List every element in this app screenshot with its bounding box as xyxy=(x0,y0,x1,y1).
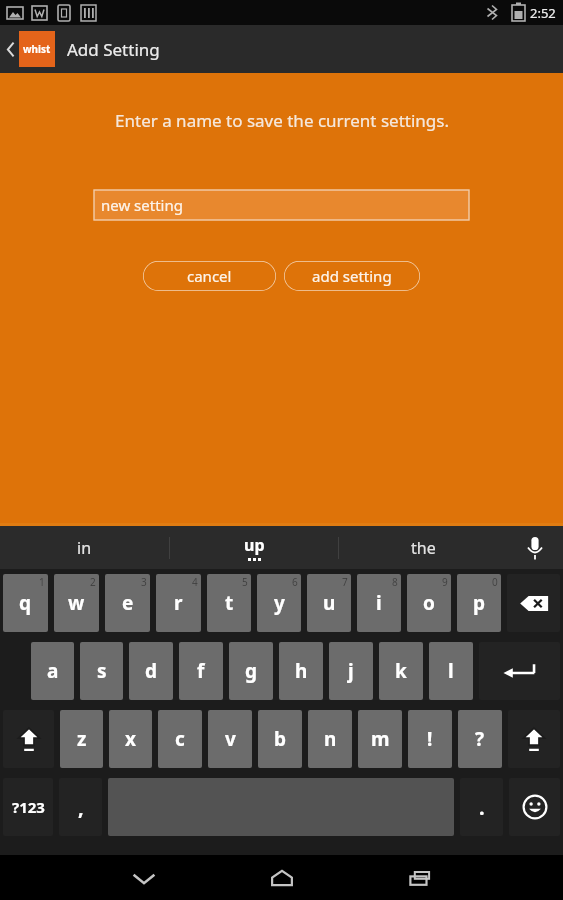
staticText: 4 xyxy=(192,575,198,589)
staticText: d xyxy=(145,658,158,684)
button[interactable]: . xyxy=(460,778,503,836)
button[interactable]: Enter xyxy=(479,642,560,700)
staticText: n xyxy=(324,726,337,752)
other: Back xyxy=(5,40,16,59)
button[interactable]: new setting xyxy=(94,190,469,220)
button[interactable]: h xyxy=(279,642,323,700)
button[interactable]: in xyxy=(0,526,169,569)
staticText: 6 xyxy=(292,575,298,589)
button[interactable]: l xyxy=(429,642,473,700)
staticText: a xyxy=(47,658,59,684)
button[interactable]: Voice input xyxy=(507,526,563,569)
staticText: b xyxy=(274,726,287,752)
button[interactable]: y xyxy=(257,574,301,632)
button[interactable]: Back xyxy=(0,25,160,73)
staticText: p xyxy=(473,590,486,616)
button[interactable]: w xyxy=(54,574,99,632)
staticText: 5 xyxy=(242,575,248,589)
button[interactable]: p xyxy=(457,574,501,632)
button[interactable]: the xyxy=(339,526,507,569)
button[interactable]: g xyxy=(229,642,273,700)
staticText: Add Setting xyxy=(67,38,160,61)
staticText: ?123 xyxy=(12,797,45,817)
staticText: k xyxy=(395,658,407,684)
button[interactable]: i xyxy=(357,574,401,632)
button[interactable]: b xyxy=(258,710,302,768)
button[interactable]: cancel xyxy=(143,261,276,291)
staticText: h xyxy=(295,658,308,684)
staticText: 1 xyxy=(39,575,45,589)
button[interactable]: ? xyxy=(458,710,502,768)
staticText: f xyxy=(197,658,205,684)
button[interactable]: s xyxy=(80,642,123,700)
staticText: ! xyxy=(427,726,433,752)
button[interactable]: u xyxy=(307,574,351,632)
button[interactable]: c xyxy=(158,710,202,768)
staticText: the xyxy=(411,537,436,559)
staticText: 7 xyxy=(342,575,348,589)
staticText: x xyxy=(125,726,136,752)
staticText: i xyxy=(376,590,382,616)
staticText: new setting xyxy=(101,195,183,215)
staticText: q xyxy=(19,590,32,616)
staticText: v xyxy=(225,726,236,752)
button[interactable]: q xyxy=(3,574,48,632)
staticText: r xyxy=(174,590,183,616)
staticText: . xyxy=(479,794,485,821)
staticText: 2 xyxy=(90,575,96,589)
staticText: ? xyxy=(475,726,485,752)
staticText: o xyxy=(423,590,435,616)
staticText: w xyxy=(68,590,85,616)
button[interactable]: Recent apps xyxy=(388,855,452,900)
staticText: u xyxy=(323,590,336,616)
staticText: in xyxy=(77,537,92,559)
button[interactable]: Emoji xyxy=(509,778,560,836)
staticText: 3 xyxy=(141,575,147,589)
button[interactable]: x xyxy=(109,710,152,768)
button[interactable]: , xyxy=(59,778,102,836)
staticText: 2:52 xyxy=(530,4,556,22)
button[interactable]: Delete xyxy=(507,574,560,632)
staticText: s xyxy=(97,658,107,684)
button[interactable]: a xyxy=(31,642,74,700)
button[interactable]: Home xyxy=(250,855,314,900)
button[interactable]: up xyxy=(170,526,338,569)
staticText: c xyxy=(175,726,185,752)
button[interactable]: v xyxy=(208,710,252,768)
button[interactable]: m xyxy=(358,710,402,768)
staticText: 9 xyxy=(442,575,448,589)
button[interactable]: Shift xyxy=(3,710,54,768)
button[interactable]: r xyxy=(156,574,201,632)
staticText: , xyxy=(78,794,84,821)
staticText: t xyxy=(225,590,234,616)
staticText: 0 xyxy=(492,575,498,589)
staticText: e xyxy=(122,590,134,616)
staticText: Enter a name to save the current setting… xyxy=(115,109,449,132)
button[interactable]: Shift xyxy=(508,710,560,768)
button[interactable]: j xyxy=(329,642,373,700)
button[interactable]: t xyxy=(207,574,251,632)
button[interactable]: ?123 xyxy=(3,778,53,836)
staticText: up xyxy=(244,534,265,556)
staticText: l xyxy=(448,658,454,684)
staticText: cancel xyxy=(187,266,232,286)
staticText: g xyxy=(245,658,258,684)
button[interactable]: f xyxy=(179,642,223,700)
button[interactable]: d xyxy=(129,642,173,700)
button[interactable]: k xyxy=(379,642,423,700)
button[interactable]: ! xyxy=(408,710,452,768)
button[interactable]: add setting xyxy=(284,261,420,291)
staticText: z xyxy=(77,726,87,752)
button[interactable]: z xyxy=(60,710,103,768)
button[interactable]: Hide keyboard xyxy=(112,855,176,900)
staticText: whist xyxy=(23,42,51,56)
staticText: add setting xyxy=(312,266,392,286)
button[interactable]: o xyxy=(407,574,451,632)
button[interactable]: n xyxy=(308,710,352,768)
staticText: j xyxy=(348,658,354,684)
staticText: y xyxy=(274,590,285,616)
button[interactable]: e xyxy=(105,574,150,632)
staticText: 8 xyxy=(392,575,398,589)
staticText: m xyxy=(371,726,390,752)
